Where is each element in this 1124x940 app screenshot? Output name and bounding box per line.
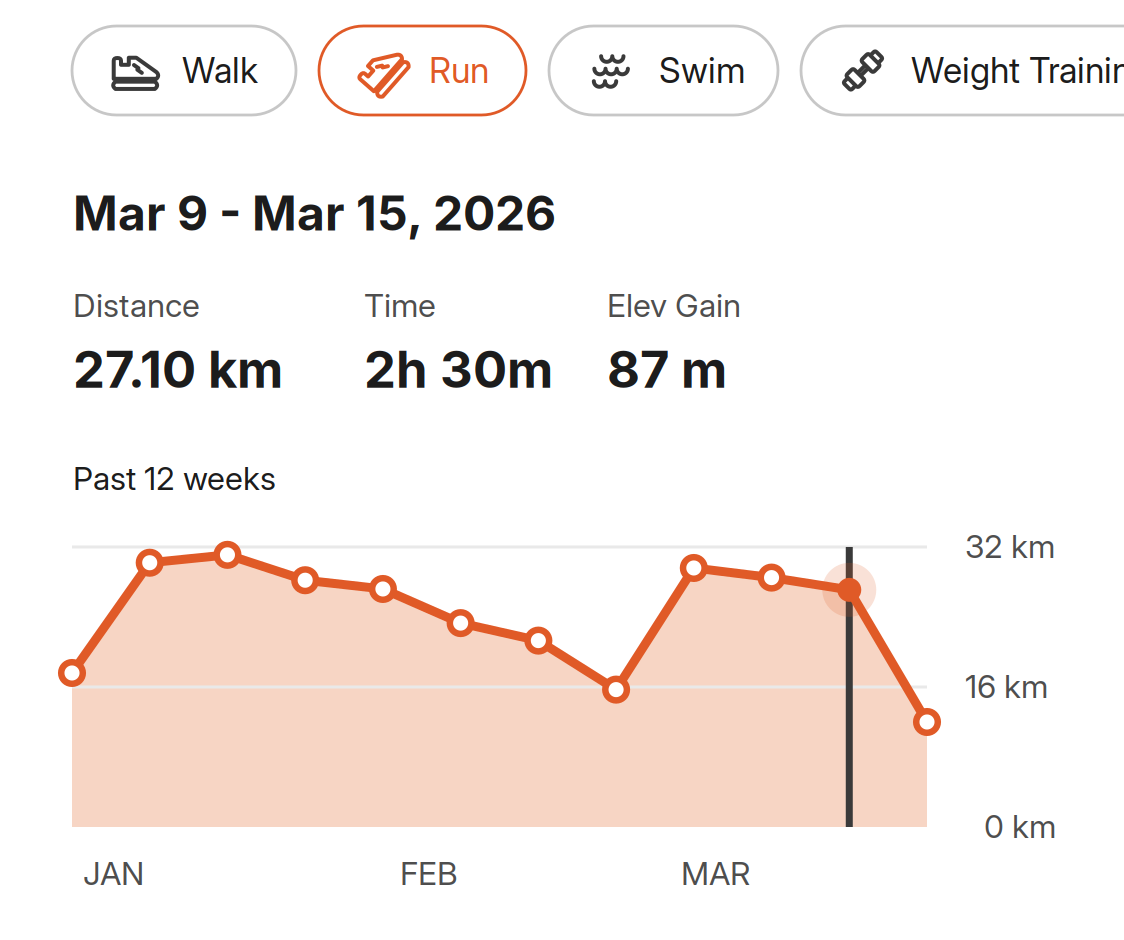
staticText: 0 km: [984, 807, 1056, 846]
staticText: Weight Training: [911, 49, 1124, 91]
staticText: FEB: [400, 854, 458, 893]
staticText: 32 km: [965, 527, 1055, 566]
staticText: MAR: [681, 854, 750, 893]
staticText: JAN: [83, 854, 144, 893]
button[interactable]: Swim: [549, 26, 778, 115]
staticText: Walk: [182, 49, 258, 91]
button[interactable]: Run: [319, 26, 526, 115]
staticText: 2h 30m: [364, 339, 553, 400]
staticText: 16 km: [965, 667, 1048, 706]
staticText: Mar 9 - Mar 15, 2026: [73, 184, 556, 242]
staticText: Distance: [73, 286, 200, 325]
staticText: 87 m: [607, 339, 727, 400]
button[interactable]: Walk: [72, 26, 296, 115]
staticText: Time: [364, 286, 436, 325]
button[interactable]: Weight Training: [801, 26, 1124, 115]
staticText: Past 12 weeks: [73, 459, 276, 498]
staticText: 27.10 km: [73, 339, 283, 400]
staticText: Swim: [659, 49, 746, 91]
staticText: Run: [429, 49, 489, 91]
staticText: Elev Gain: [607, 286, 741, 325]
